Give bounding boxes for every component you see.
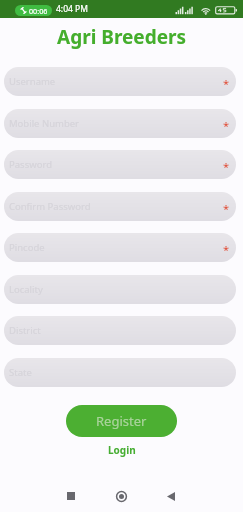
staticText: * — [223, 118, 230, 133]
staticText: Password — [9, 158, 52, 171]
button[interactable]: Login — [98, 441, 146, 459]
staticText: Register — [96, 412, 147, 430]
button[interactable]: Confirm Password — [4, 192, 236, 221]
staticText: Confirm Password — [9, 200, 91, 213]
staticText: Login — [108, 443, 136, 457]
staticText: * — [223, 201, 230, 216]
staticText: Username — [9, 75, 56, 88]
staticText: * — [223, 159, 230, 174]
button[interactable]: District — [4, 316, 236, 345]
staticText: Mobile Number — [9, 117, 80, 130]
button[interactable]: Locality — [4, 275, 236, 304]
staticText: District — [9, 324, 41, 337]
button[interactable]: Recent apps — [51, 486, 91, 506]
staticText: 4:04 PM — [56, 3, 88, 15]
staticText: * — [223, 242, 230, 257]
button[interactable]: Username — [4, 67, 236, 96]
staticText: 00:06 — [29, 6, 48, 16]
staticText: Locality — [9, 283, 43, 296]
staticText: * — [223, 76, 230, 91]
staticText: State — [9, 366, 32, 379]
button[interactable]: Password — [4, 150, 236, 179]
button[interactable]: State — [4, 358, 236, 387]
button[interactable]: Register — [66, 405, 177, 437]
staticText: Agri Breeders — [57, 24, 187, 50]
button[interactable]: Mobile Number — [4, 109, 236, 138]
staticText: Pincode — [9, 241, 45, 254]
button[interactable]: Pincode — [4, 233, 236, 262]
button[interactable]: Home — [101, 486, 141, 506]
button[interactable]: Back — [151, 486, 191, 506]
